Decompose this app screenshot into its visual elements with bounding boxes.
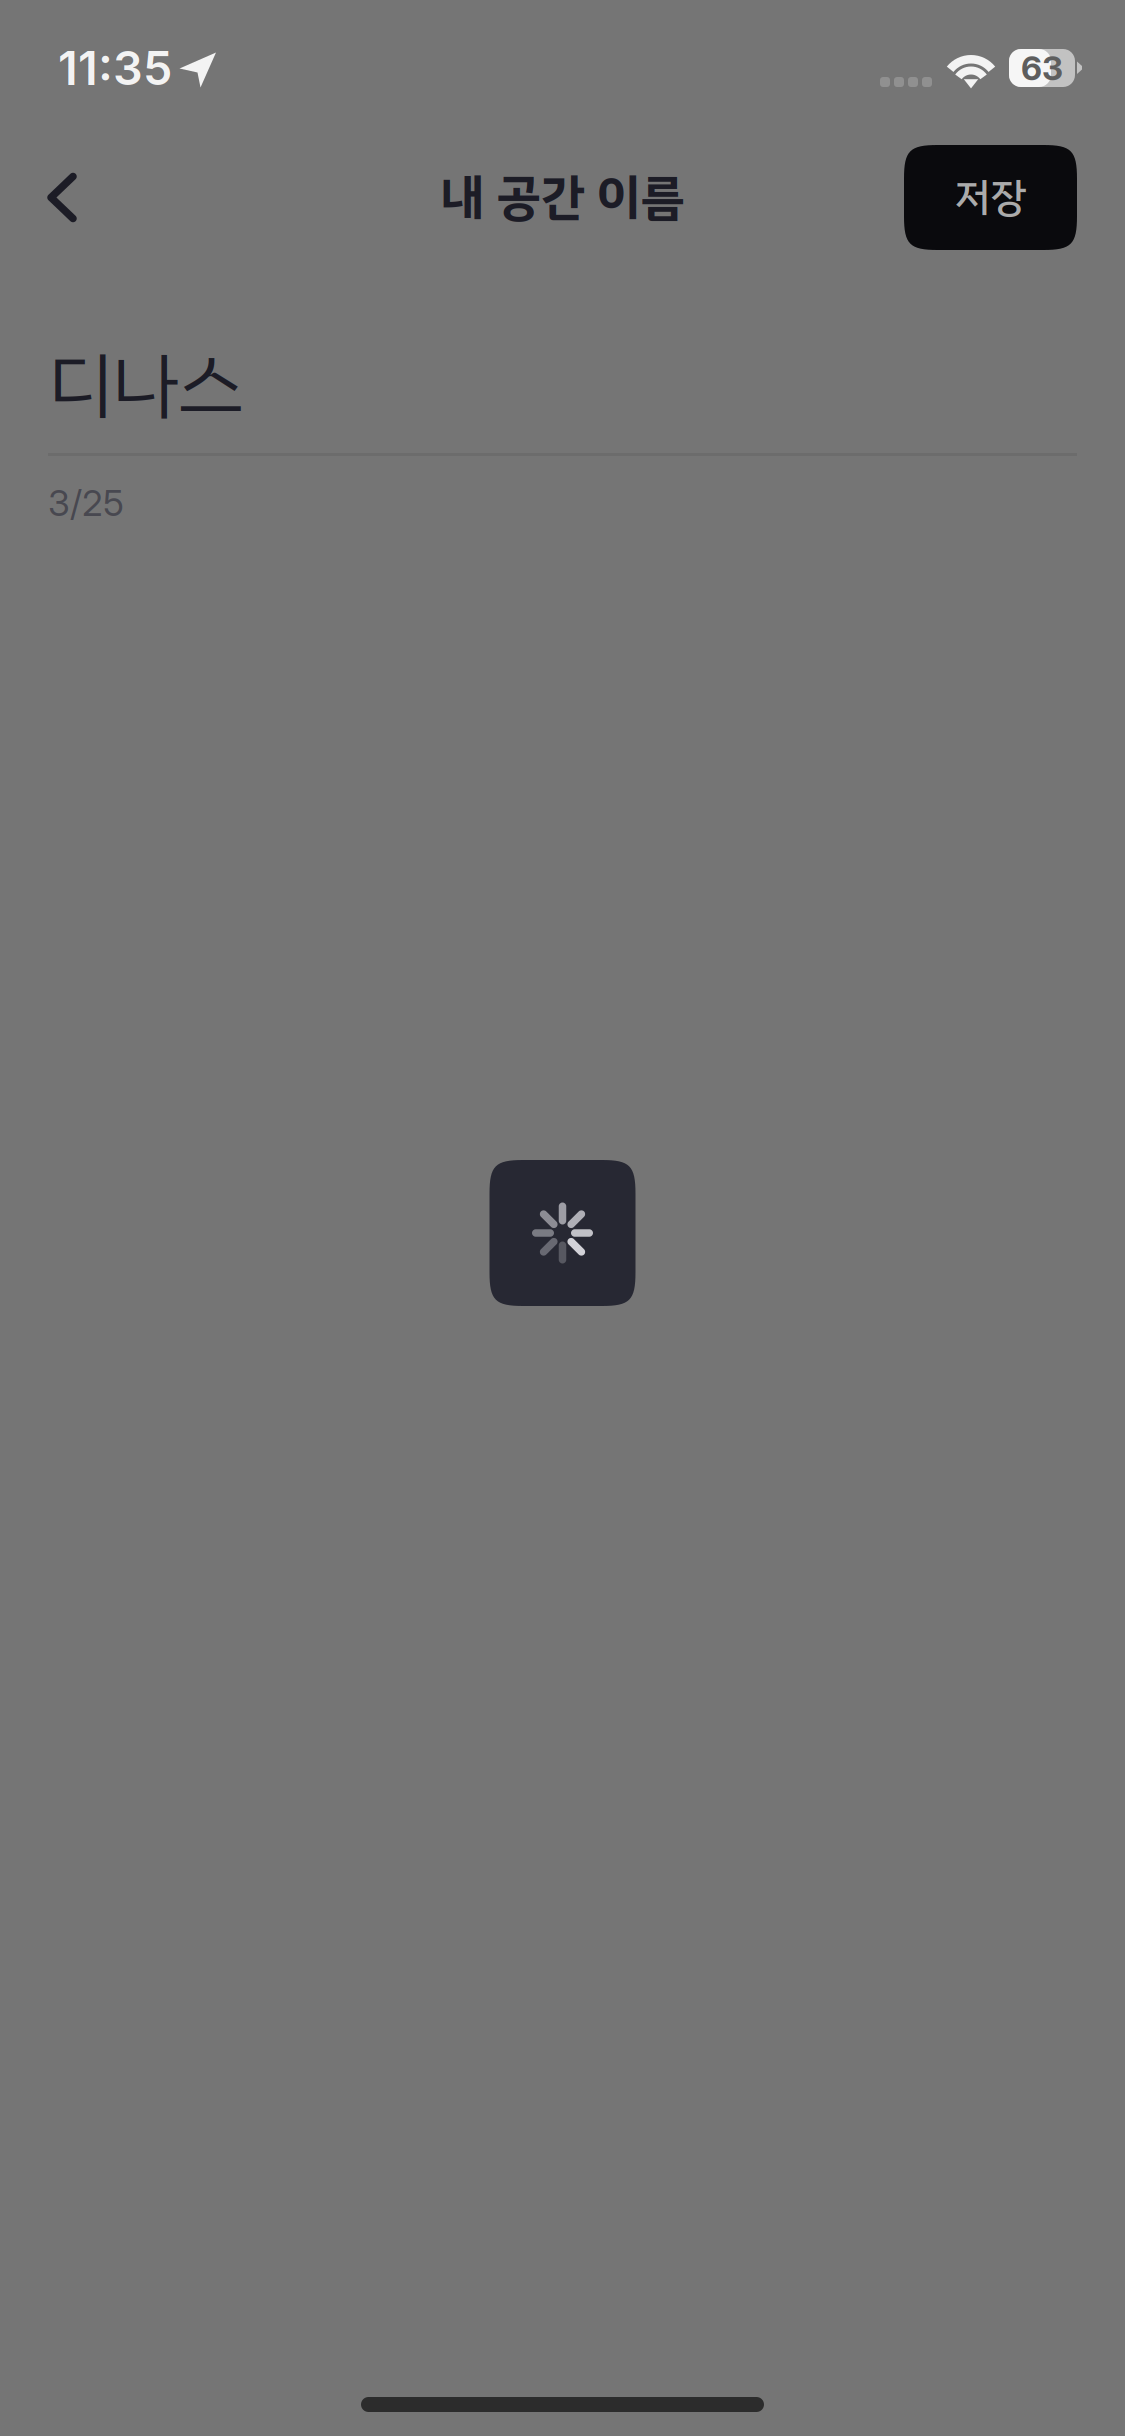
staticText: 저장 [954, 167, 1026, 227]
button[interactable]: 저장 [904, 145, 1077, 250]
staticText: 63 [1021, 48, 1063, 88]
staticText: 3/25 [48, 481, 124, 525]
staticText: 디나스 [48, 331, 243, 441]
button[interactable]: Back [14, 145, 110, 250]
staticText: 내 공간 이름 [440, 160, 684, 234]
staticText: 11:35 [58, 40, 172, 96]
